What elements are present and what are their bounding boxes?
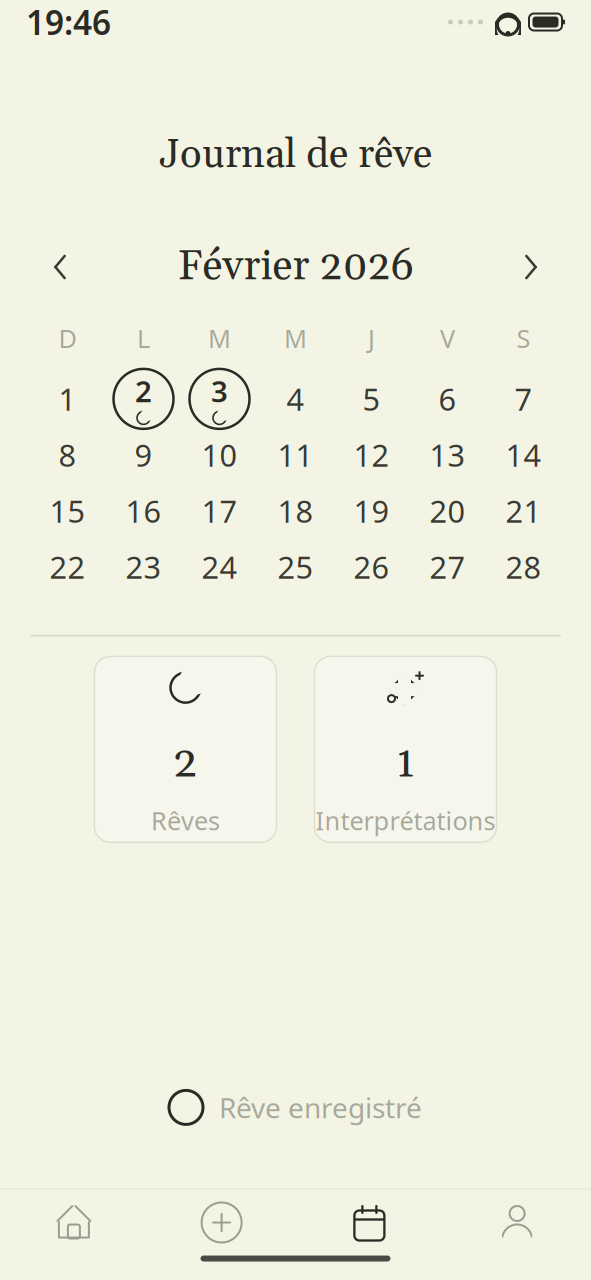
staticText: Journal de rêve	[159, 130, 432, 181]
button[interactable]: 2	[105, 371, 181, 427]
staticText: 28	[505, 546, 541, 587]
staticText: 19:46	[26, 0, 111, 44]
staticText: M	[284, 321, 307, 355]
button[interactable]: Profil	[443, 1191, 591, 1253]
staticText: 22	[49, 546, 85, 587]
staticText: 12	[353, 434, 389, 475]
button[interactable]: 6	[409, 371, 485, 427]
staticText: 27	[429, 546, 465, 587]
staticText: Rêves	[151, 803, 220, 837]
button[interactable]: 21	[485, 483, 561, 539]
staticText: 11	[277, 434, 313, 475]
button[interactable]: 10	[181, 427, 257, 483]
staticText: 24	[201, 546, 237, 587]
button[interactable]: 19	[333, 483, 409, 539]
button[interactable]: 13	[409, 427, 485, 483]
button[interactable]: 16	[105, 483, 181, 539]
button[interactable]: 12	[333, 427, 409, 483]
staticText: 23	[125, 546, 161, 587]
staticText: 9	[134, 434, 152, 475]
staticText: Février 2026	[177, 241, 413, 293]
button[interactable]: 14	[485, 427, 561, 483]
button[interactable]: 24	[181, 539, 257, 595]
staticText: 2	[173, 736, 198, 791]
staticText: 20	[429, 490, 465, 531]
staticText: 26	[353, 546, 389, 587]
staticText: 16	[125, 490, 161, 531]
staticText: Interprétations	[315, 803, 495, 837]
button[interactable]: 15	[29, 483, 105, 539]
button[interactable]: 28	[485, 539, 561, 595]
button[interactable]: Mois précédent	[30, 243, 90, 291]
button[interactable]: 25	[257, 539, 333, 595]
staticText: V	[440, 321, 455, 355]
staticText: 10	[201, 434, 237, 475]
staticText: 7	[514, 378, 532, 419]
button[interactable]: 9	[105, 427, 181, 483]
button[interactable]: 11	[257, 427, 333, 483]
button[interactable]: Accueil	[0, 1191, 148, 1253]
button[interactable]: 7	[485, 371, 561, 427]
button[interactable]: 8	[29, 427, 105, 483]
button[interactable]: 22	[29, 539, 105, 595]
button[interactable]: 26	[333, 539, 409, 595]
staticText: 1	[396, 736, 415, 791]
staticText: Rêve enregistré	[219, 1089, 422, 1126]
staticText: 21	[505, 490, 541, 531]
staticText: L	[137, 321, 150, 355]
staticText: 13	[429, 434, 465, 475]
staticText: 6	[438, 378, 456, 419]
button[interactable]: 4	[257, 371, 333, 427]
staticText: 8	[58, 434, 76, 475]
staticText: 4	[286, 378, 304, 419]
button[interactable]: 17	[181, 483, 257, 539]
button[interactable]: 1	[29, 371, 105, 427]
button[interactable]: 3	[181, 371, 257, 427]
button[interactable]: Mois suivant	[501, 243, 561, 291]
staticText: 1	[58, 378, 76, 419]
button[interactable]: 1	[314, 656, 496, 842]
staticText: 25	[277, 546, 313, 587]
staticText: 2	[135, 371, 152, 410]
button[interactable]: 27	[409, 539, 485, 595]
staticText: 5	[362, 378, 380, 419]
staticText: 14	[505, 434, 541, 475]
button[interactable]: Calendrier	[295, 1191, 443, 1253]
button[interactable]: 23	[105, 539, 181, 595]
staticText: S	[516, 321, 530, 355]
staticText: 17	[201, 490, 237, 531]
staticText: J	[368, 321, 375, 355]
button[interactable]: Ajouter un rêve	[148, 1191, 296, 1253]
button[interactable]: 20	[409, 483, 485, 539]
button[interactable]: 18	[257, 483, 333, 539]
staticText: 18	[277, 490, 313, 531]
staticText: D	[58, 321, 76, 355]
button[interactable]: 2	[94, 656, 276, 842]
staticText: 19	[353, 490, 389, 531]
button[interactable]: 5	[333, 371, 409, 427]
staticText: 3	[211, 371, 228, 410]
staticText: M	[208, 321, 231, 355]
staticText: 15	[49, 490, 85, 531]
